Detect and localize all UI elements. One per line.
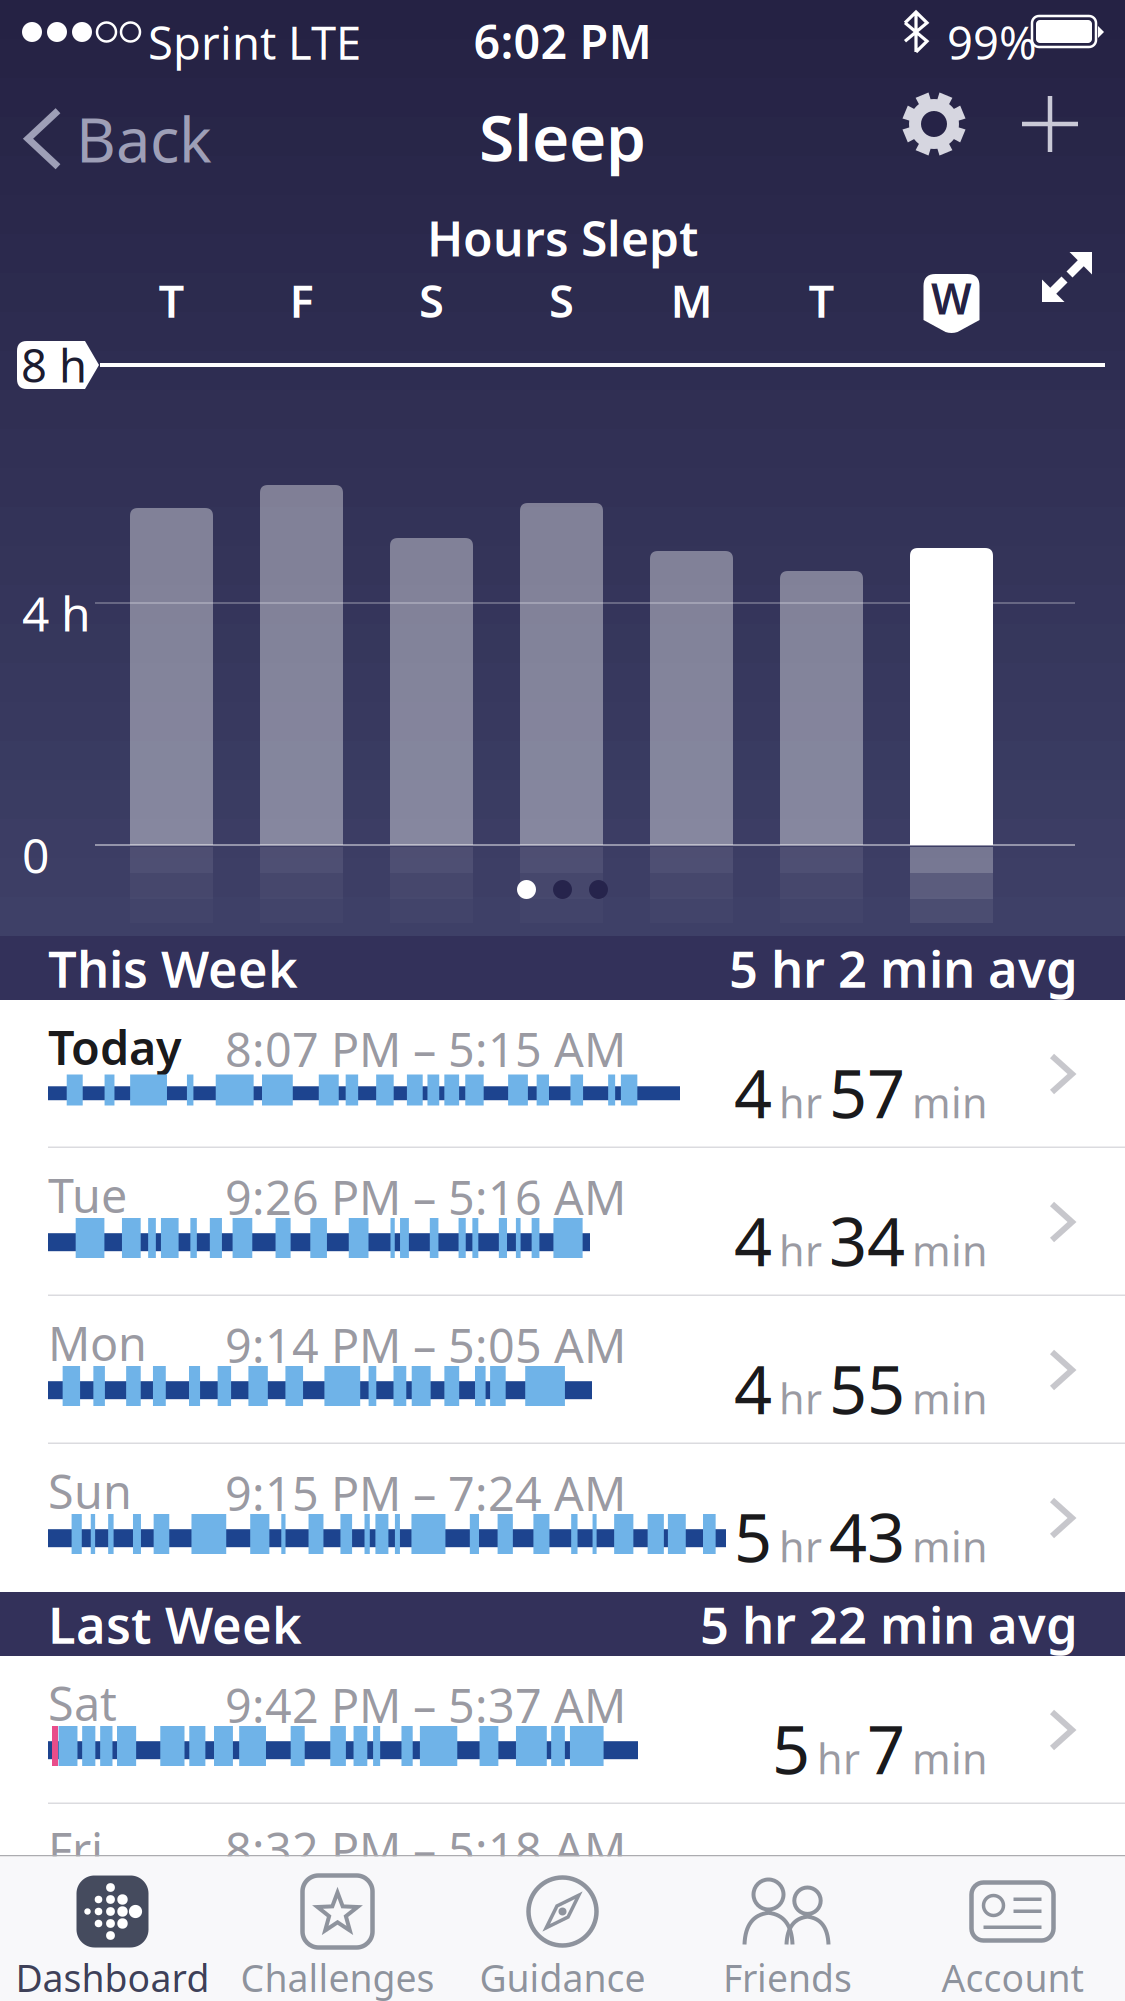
staticText: 5 (772, 1704, 810, 1792)
button[interactable]: Back (28, 98, 212, 179)
staticText: W (931, 270, 972, 326)
staticText: 34 (829, 1196, 905, 1284)
staticText: 6:02 PM (473, 10, 651, 72)
staticText: Sun (48, 1460, 132, 1522)
button[interactable]: Friends (675, 1856, 900, 2000)
staticText: This Week (48, 934, 298, 1002)
staticText: 57 (829, 1048, 905, 1136)
button[interactable]: Add sleep log (1022, 96, 1078, 152)
staticText: min (912, 1223, 988, 1278)
staticText: 9:15 PM – 7:24 AM (225, 1462, 626, 1524)
staticText: 9:42 PM – 5:37 AM (225, 1674, 626, 1736)
button[interactable]: Account (900, 1856, 1125, 2000)
button[interactable]: Wednesday (923, 274, 979, 334)
staticText: T (158, 270, 184, 330)
staticText: 8 h (21, 335, 87, 395)
staticText: 4 (734, 1196, 772, 1284)
staticText: 4 (734, 1048, 772, 1136)
staticText: 8:32 PM – 5:18 AM (225, 1818, 626, 1880)
staticText: min (912, 1519, 988, 1574)
staticText: 5 hr 2 min avg (729, 934, 1078, 1002)
staticText: 55 (829, 1344, 905, 1432)
staticText: 43 (829, 1492, 905, 1580)
staticText: 7 (867, 1704, 905, 1792)
staticText: hr (779, 1223, 822, 1278)
staticText: hr (779, 1075, 822, 1130)
staticText: 8:07 PM – 5:15 AM (225, 1018, 626, 1080)
staticText: min (912, 1075, 988, 1130)
staticText: T (808, 270, 834, 330)
staticText: Fri (48, 1818, 103, 1880)
staticText: min (912, 1731, 988, 1786)
staticText: Friends (723, 1953, 852, 2001)
button[interactable]: Expand chart (1042, 252, 1092, 302)
staticText: F (289, 270, 313, 330)
staticText: 9:26 PM – 5:16 AM (225, 1166, 626, 1228)
staticText: Dashboard (15, 1953, 209, 2001)
staticText: Guidance (479, 1953, 645, 2001)
staticText: S (419, 270, 444, 330)
staticText: 0 (22, 823, 49, 887)
staticText: hr (817, 1731, 860, 1786)
staticText: 4 (734, 1344, 772, 1432)
staticText: Tue (48, 1164, 127, 1226)
staticText: 99% (947, 12, 1037, 72)
button[interactable]: Sun (0, 1444, 1125, 1592)
staticText: S (549, 270, 574, 330)
staticText: Last Week (48, 1590, 302, 1658)
staticText: hr (779, 1371, 822, 1426)
button[interactable]: Guidance (450, 1856, 675, 2000)
button[interactable]: Mon (0, 1296, 1125, 1444)
staticText: M (670, 270, 712, 330)
staticText: 5 hr 22 min avg (700, 1590, 1078, 1658)
staticText: Back (76, 98, 212, 179)
staticText: LTE (288, 12, 361, 72)
staticText: Challenges (240, 1953, 434, 2001)
button[interactable]: Challenges (225, 1856, 450, 2000)
staticText: Sleep (479, 94, 646, 179)
staticText: 5 (734, 1492, 772, 1580)
staticText: Sprint (148, 12, 276, 72)
staticText: hr (779, 1519, 822, 1574)
staticText: W (930, 270, 973, 330)
staticText: Hours Slept (427, 206, 698, 270)
button[interactable]: Today (0, 1000, 1125, 1148)
button[interactable]: Tue (0, 1148, 1125, 1296)
staticText: 9:14 PM – 5:05 AM (225, 1314, 626, 1376)
staticText: Account (941, 1953, 1083, 2001)
button[interactable]: Settings (902, 92, 966, 156)
button[interactable]: Dashboard (0, 1856, 225, 2000)
staticText: 4 h (22, 581, 91, 645)
staticText: min (912, 1371, 988, 1426)
button[interactable]: Sat (0, 1656, 1125, 1804)
staticText: Mon (48, 1312, 147, 1374)
staticText: Today (48, 1016, 182, 1078)
staticText: Sat (48, 1672, 117, 1734)
